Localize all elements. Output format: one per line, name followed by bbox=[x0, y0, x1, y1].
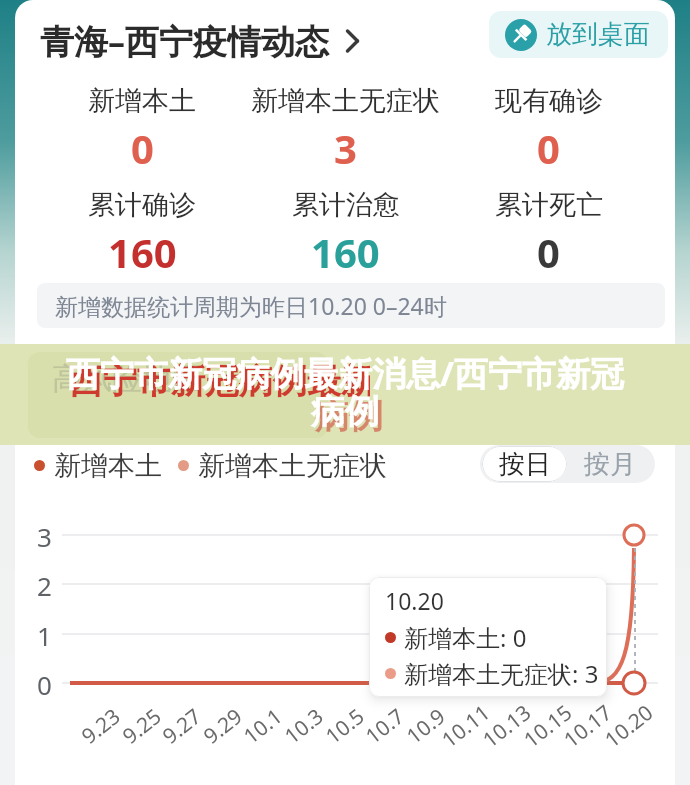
staticText: 0 bbox=[37, 667, 52, 699]
staticText: 西宁市新冠病例最新消息/西宁市新冠 bbox=[0, 350, 690, 396]
staticText: 新增本土无症状: 3 bbox=[404, 657, 599, 690]
staticText: 新增本土: 0 bbox=[404, 621, 527, 654]
staticText: 10.9 bbox=[400, 702, 449, 748]
staticText: 10.17 bbox=[558, 698, 616, 752]
button[interactable]: 放到桌面 bbox=[489, 11, 668, 58]
staticText: 放到桌面 bbox=[546, 18, 650, 51]
staticText: 0 bbox=[131, 121, 154, 175]
staticText: 9.25 bbox=[116, 702, 165, 748]
staticText: 10.1 bbox=[237, 702, 286, 748]
staticText: 9.29 bbox=[197, 702, 246, 748]
staticText: 10.5 bbox=[319, 702, 368, 748]
staticText: 10.20 bbox=[385, 585, 444, 616]
staticText: 10.11 bbox=[436, 698, 494, 752]
staticText: 西宁市新冠病例最新消息/西宁市新冠 bbox=[3, 357, 370, 403]
staticText: 0 bbox=[537, 121, 560, 175]
staticText: 160 bbox=[311, 225, 380, 279]
button[interactable]: 按月 bbox=[567, 446, 653, 482]
staticText: 累计治愈 bbox=[292, 188, 400, 222]
staticText: 10.13 bbox=[477, 698, 535, 752]
staticText: 病例 bbox=[0, 390, 690, 433]
staticText: 现有确诊 bbox=[495, 84, 603, 118]
staticText: 青海–西宁疫情动态 bbox=[40, 18, 329, 64]
staticText: 按日 bbox=[499, 448, 551, 481]
staticText: 2 bbox=[37, 568, 52, 600]
staticText: 新增本土无症状 bbox=[251, 84, 440, 118]
button[interactable]: 青海–西宁疫情动态 bbox=[40, 18, 361, 64]
staticText: 10.15 bbox=[518, 698, 576, 752]
staticText: 9.27 bbox=[156, 702, 205, 748]
staticText: 新增本土 bbox=[88, 84, 196, 118]
staticText: 1 bbox=[37, 618, 52, 650]
staticText: 按月 bbox=[584, 448, 636, 481]
staticText: 160 bbox=[108, 225, 177, 279]
staticText: 9.23 bbox=[75, 702, 124, 748]
staticText: 0 bbox=[537, 225, 560, 279]
button[interactable]: 按日 bbox=[482, 446, 567, 482]
staticText: 10.3 bbox=[278, 702, 327, 748]
staticText: 新增本土 bbox=[54, 449, 162, 481]
staticText: 累计确诊 bbox=[88, 188, 196, 222]
staticText: 病例 bbox=[4, 395, 690, 438]
staticText: 高风险地区 bbox=[52, 360, 202, 398]
staticText: 3 bbox=[37, 519, 52, 551]
staticText: 累计死亡 bbox=[495, 188, 603, 222]
staticText: 新增数据统计周期为昨日10.20 0–24时 bbox=[55, 290, 447, 321]
staticText: 新增本土无症状 bbox=[198, 449, 387, 481]
staticText: 3 bbox=[334, 121, 357, 175]
staticText: 10.20 bbox=[599, 698, 657, 752]
staticText: 10.7 bbox=[359, 702, 408, 748]
